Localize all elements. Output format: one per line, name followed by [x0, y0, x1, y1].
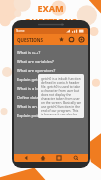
button[interactable]: Settings [78, 36, 85, 43]
staticText: What is an array? [17, 104, 50, 109]
button[interactable]: Define data types [17, 93, 85, 102]
staticText: getch() is a inbuilt function defined in… [41, 77, 81, 115]
staticText: EXAM [37, 2, 64, 14]
button[interactable]: Search [72, 154, 80, 162]
button[interactable]: Back [22, 154, 30, 162]
button[interactable]: What is c++? [17, 48, 85, 57]
button[interactable]: Explain pointers [17, 111, 85, 120]
staticText: Name [16, 29, 25, 33]
button[interactable]: getch() is a inbuilt function defined in… [38, 74, 84, 118]
staticText: What is a loop? [17, 86, 46, 91]
button[interactable]: What is a loop? [17, 84, 85, 93]
staticText: What is c++? [17, 50, 41, 55]
button[interactable]: Home [39, 154, 47, 162]
staticText: QUESTIONS [24, 15, 77, 27]
staticText: What are operators? [17, 68, 56, 73]
staticText: Explain pointers [17, 113, 48, 118]
button[interactable]: What is an array? [17, 102, 85, 111]
button[interactable]: Recents [55, 154, 63, 162]
button[interactable]: Explain getch() function [17, 75, 85, 84]
staticText: QUESTIONS [17, 37, 44, 43]
staticText: Define data types [17, 95, 50, 100]
staticText: What are variables? [17, 59, 54, 64]
button[interactable]: What are operators? [17, 66, 85, 75]
staticText: Explain getch() function [17, 77, 62, 82]
button[interactable]: What are variables? [17, 57, 85, 66]
button[interactable]: Refresh [68, 36, 75, 43]
button[interactable]: Favourite [58, 36, 65, 43]
